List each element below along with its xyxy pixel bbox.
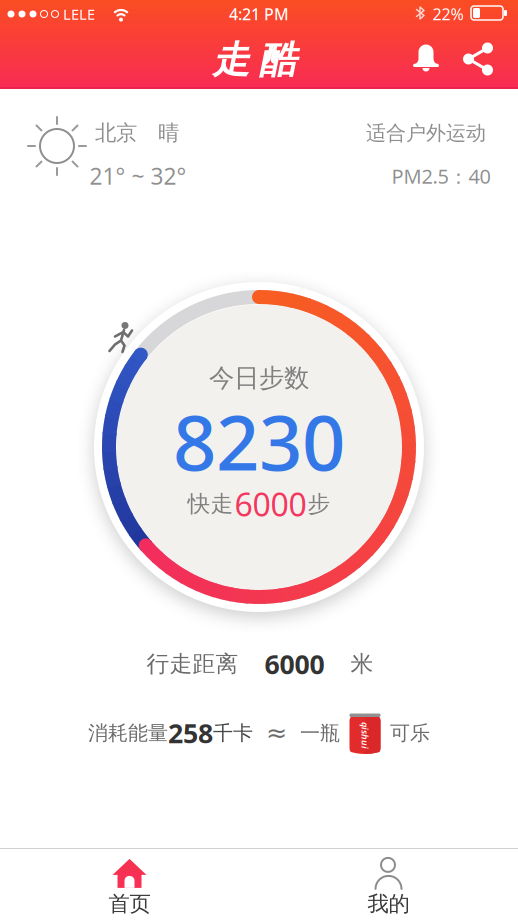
staticText: 北京 xyxy=(95,120,137,146)
staticText: 步 xyxy=(307,490,330,518)
button[interactable]: 首页 xyxy=(0,851,259,920)
staticText: PM2.5：40 xyxy=(391,163,490,189)
staticText: 走酷 xyxy=(212,37,296,83)
button[interactable]: 我的 xyxy=(259,851,518,920)
staticText: 8230 xyxy=(173,390,345,491)
button[interactable]: 通知 xyxy=(406,39,446,79)
staticText: 22% xyxy=(432,3,463,25)
staticText: 4:21 PM xyxy=(229,3,289,25)
staticText: 可乐 xyxy=(390,721,430,745)
staticText: 6000 xyxy=(264,646,324,682)
staticText: 适合户外运动 xyxy=(366,121,486,145)
staticText: 首页 xyxy=(108,891,150,917)
staticText: 消耗能量 xyxy=(88,721,168,745)
staticText: 快走 xyxy=(187,490,233,518)
staticText: 6000 xyxy=(234,483,306,525)
staticText: 晴 xyxy=(158,120,179,146)
staticText: 21° ~ 32° xyxy=(89,161,186,191)
button[interactable]: 分享 xyxy=(458,39,498,79)
staticText: ≈ xyxy=(266,719,287,747)
staticText: 行走距离 xyxy=(146,650,238,678)
staticText: 258 xyxy=(168,715,213,751)
staticText: qishui xyxy=(351,729,378,742)
staticText: 一瓶 xyxy=(300,721,340,745)
staticText: 今日步数 xyxy=(209,362,309,393)
staticText: 我的 xyxy=(367,891,409,917)
staticText: LELE xyxy=(63,4,95,24)
staticText: 米 xyxy=(350,650,373,678)
staticText: 千卡 xyxy=(213,721,253,745)
